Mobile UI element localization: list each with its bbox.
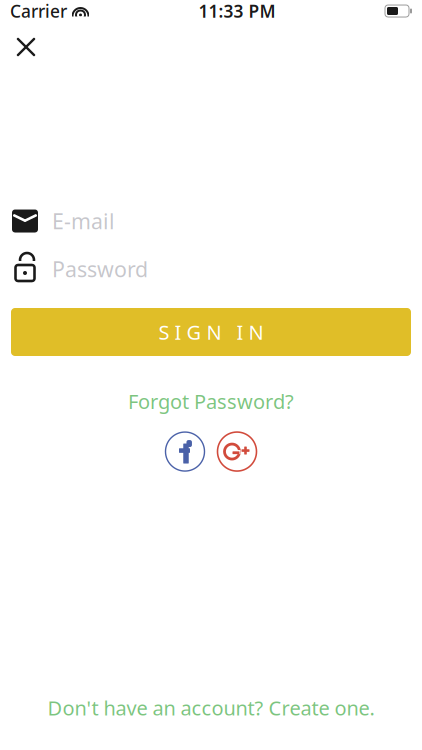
button[interactable]: Close xyxy=(4,25,48,69)
staticText: 11:33 PM xyxy=(198,0,275,22)
staticText: S I G N I N xyxy=(158,319,263,345)
staticText: Don't have an account? Create one. xyxy=(47,694,374,721)
staticText: Carrier xyxy=(10,0,67,22)
button[interactable]: S I G N I N xyxy=(11,308,411,356)
staticText: Forgot Password? xyxy=(128,388,294,415)
button[interactable]: Don't have an account? Create one. xyxy=(35,689,386,726)
button[interactable]: Forgot Password? xyxy=(118,384,304,419)
staticText: E-mail xyxy=(52,207,115,235)
button[interactable]: Sign in with Facebook xyxy=(164,431,206,473)
staticText: Password xyxy=(52,255,148,283)
button[interactable]: Sign in with Google Plus xyxy=(216,431,258,473)
